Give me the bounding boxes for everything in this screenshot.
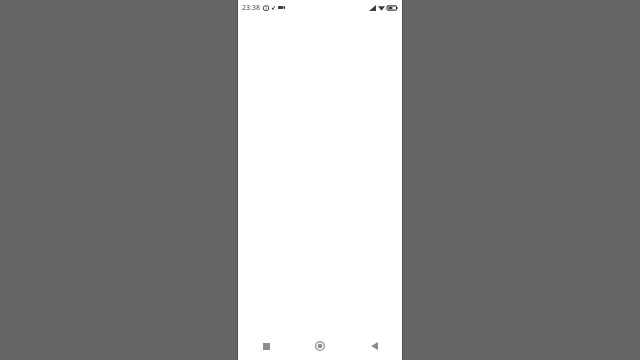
- button[interactable]: Recent apps: [255, 335, 277, 357]
- button[interactable]: Home: [309, 335, 331, 357]
- button[interactable]: Back: [363, 335, 385, 357]
- staticText: 23:38: [242, 3, 260, 13]
